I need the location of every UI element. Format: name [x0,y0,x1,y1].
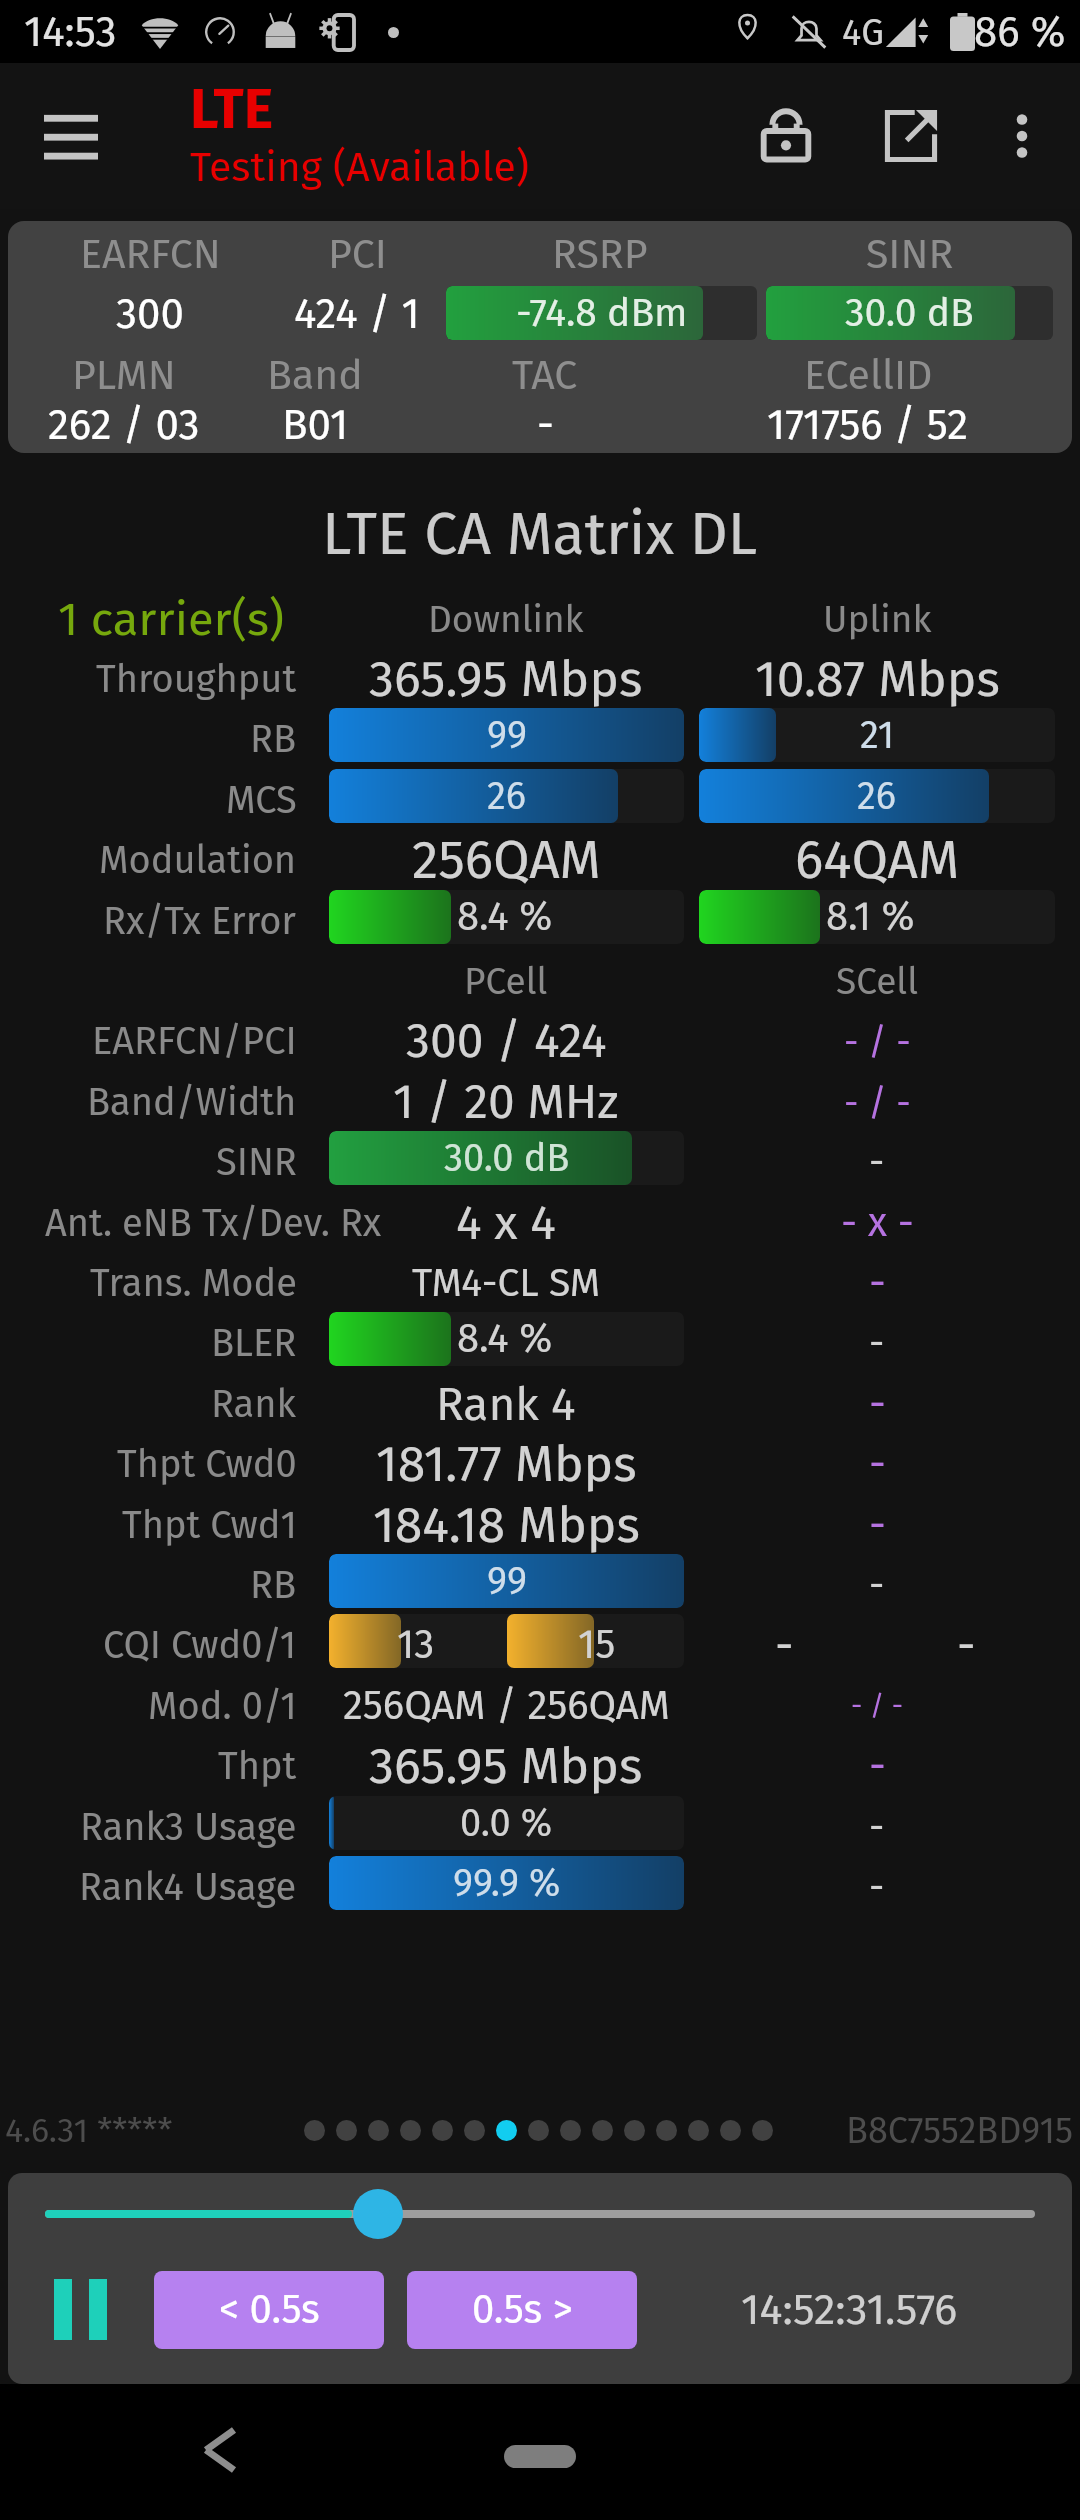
staticText: - [957,1618,976,1673]
staticText: 256QAM [412,828,601,892]
staticText: 365.95 Mbps [369,1736,643,1796]
staticText: -74.8 dBm [516,290,688,337]
staticText: SCell [836,959,918,1003]
staticText: 300 [116,289,184,339]
staticText: Ant. eNB Tx/Dev. Rx [45,1200,382,1246]
staticText: RSRP [552,230,648,279]
staticText: Rank 4 [436,1377,576,1432]
staticText: Trans. Mode [90,1260,297,1306]
staticText: PCell [464,959,548,1003]
staticText: 4.6.31 ***** [5,2110,173,2151]
staticText: RB [250,716,297,762]
staticText: 4G [842,11,884,54]
staticText: 184.18 Mbps [373,1495,640,1555]
button[interactable]: 0.5s > [407,2271,637,2349]
staticText: - [537,400,554,450]
staticText: Rx/Tx Error [103,898,297,944]
staticText: - x - [841,1199,914,1247]
staticText: Mod. 0/1 [148,1683,297,1729]
staticText: - [869,1864,885,1910]
staticText: 86 % [974,7,1066,57]
staticText: 8.4 % [457,893,553,941]
button[interactable]: Pause [42,2267,119,2352]
staticText: - / - [844,1020,911,1063]
staticText: PCI [328,230,387,279]
staticText: 99.9 % [453,1860,561,1906]
staticText: 13 [397,1621,435,1668]
staticText: LTE CA Matrix DL [322,499,758,570]
staticText: TAC [512,351,578,400]
staticText: - [775,1618,794,1673]
staticText: SINR [866,230,954,279]
staticText: Thpt [218,1743,297,1789]
button[interactable]: Lock [740,90,832,182]
staticText: PLMN [72,351,176,400]
staticText: MCS [226,777,297,823]
staticText: 8.4 % [457,1315,553,1363]
button[interactable]: Back [180,2410,260,2490]
staticText: - / - [844,1081,911,1124]
staticText: 8.1 % [826,893,915,941]
button[interactable]: Open in new window [865,90,957,182]
staticText: 171756 / 52 [767,400,969,450]
staticText: Modulation [99,837,297,883]
staticText: Rank3 Usage [80,1804,297,1850]
staticText: EARFCN/PCI [92,1018,297,1064]
staticText: 64QAM [795,828,960,892]
button[interactable]: Navigation menu [26,91,116,181]
staticText: 14:52:31.576 [741,2284,958,2336]
staticText: - [869,1500,886,1550]
staticText: 0.5s > [472,2286,573,2334]
staticText: Rank [211,1381,297,1427]
staticText: - [869,1258,886,1308]
staticText: 1 / 20 MHz [393,1073,619,1131]
staticText: Rank4 Usage [79,1864,297,1910]
button[interactable]: Home [504,2445,576,2468]
staticText: Throughput [96,656,297,702]
staticText: 14:53 [24,7,117,57]
staticText: Uplink [823,597,932,641]
staticText: CQI Cwd0/1 [103,1622,297,1668]
staticText: SINR [216,1139,297,1185]
button[interactable]: < 0.5s [154,2271,384,2349]
staticText: LTE [190,76,274,143]
staticText: 99 [487,1558,527,1604]
staticText: 1 carrier(s) [58,591,285,647]
staticText: 300 / 424 [406,1012,607,1070]
staticText: Band [267,351,363,400]
staticText: 26 [487,773,527,819]
staticText: 262 / 03 [48,400,200,450]
staticText: 4 x 4 [456,1194,556,1252]
staticText: 30.0 dB [444,1135,570,1181]
staticText: ECellID [804,351,933,400]
staticText: 365.95 Mbps [369,649,643,709]
staticText: Thpt Cwd1 [122,1502,297,1548]
staticText: Thpt Cwd0 [117,1441,297,1487]
staticText: Downlink [428,597,584,641]
staticText: 99 [487,712,527,758]
staticText: 26 [857,773,897,819]
staticText: RB [250,1562,297,1608]
staticText: 10.87 Mbps [755,649,1000,709]
staticText: EARFCN [80,230,221,279]
button[interactable]: More options [980,94,1064,178]
staticText: 424 / 1 [294,289,420,339]
staticText: - / - [851,1689,903,1723]
staticText: < 0.5s [219,2286,320,2334]
staticText: - [869,1379,886,1429]
staticText: Band/Width [87,1079,297,1125]
staticText: - [869,1320,885,1366]
staticText: 21 [860,712,895,758]
staticText: - [869,1741,886,1791]
staticText: Testing (Available) [190,143,530,192]
staticText: 256QAM / 256QAM [343,1682,670,1730]
staticText: - [869,1562,885,1608]
staticText: 181.77 Mbps [376,1434,637,1494]
staticText: 30.0 dB [845,290,974,337]
staticText: - [869,1139,885,1185]
staticText: - [869,1804,885,1850]
staticText: BLER [211,1320,297,1366]
staticText: - [869,1439,886,1489]
staticText: 0.0 % [460,1800,553,1846]
staticText: TM4-CL SM [412,1260,601,1307]
